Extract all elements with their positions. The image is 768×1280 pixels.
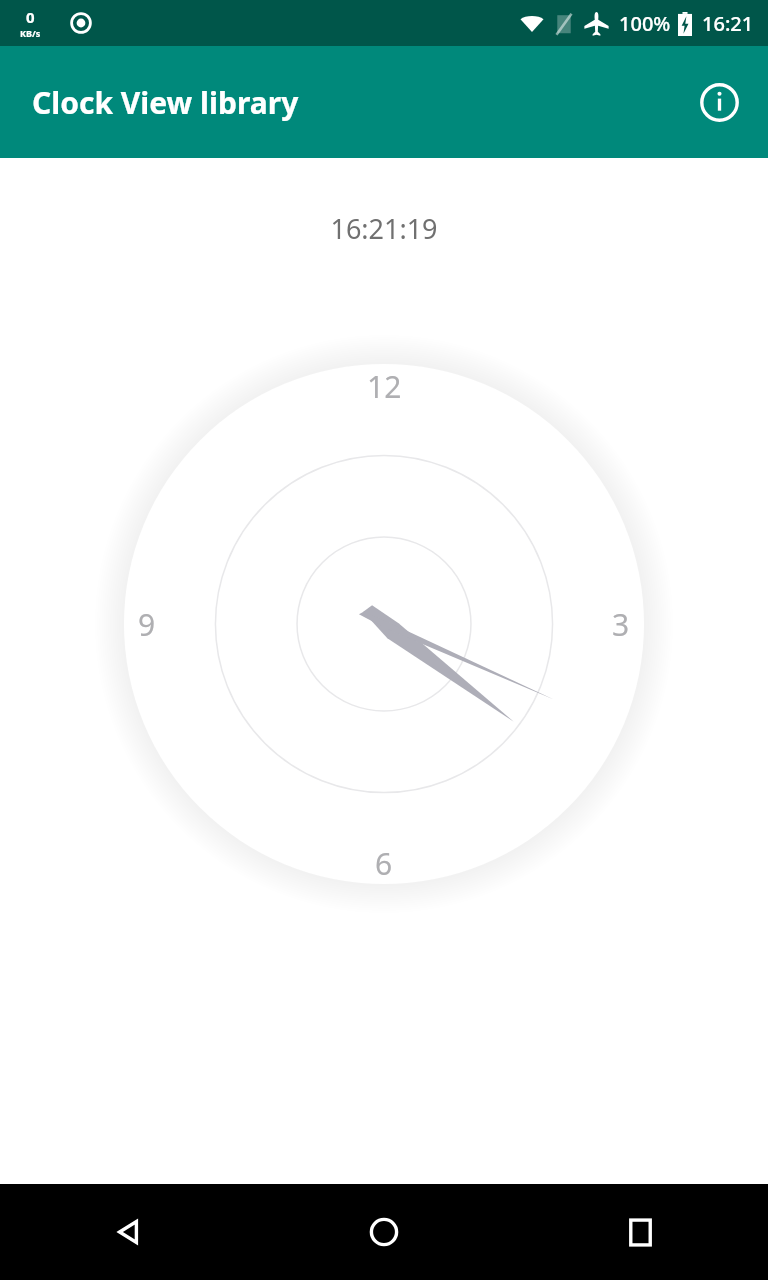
staticText: 3 bbox=[612, 604, 630, 645]
staticText: 0 bbox=[26, 7, 35, 27]
button[interactable]: Info bbox=[690, 73, 748, 131]
staticText: 16:21:19 bbox=[0, 210, 768, 247]
staticText: 16:21 bbox=[702, 10, 754, 37]
staticText: 100% bbox=[619, 10, 671, 37]
staticText: KB/s bbox=[20, 27, 41, 39]
staticText: 6 bbox=[375, 843, 393, 884]
staticText: 12 bbox=[367, 366, 402, 407]
button[interactable]: Back bbox=[0, 1184, 256, 1280]
button[interactable]: Recent apps bbox=[512, 1184, 768, 1280]
staticText: Clock View library bbox=[32, 82, 299, 123]
button[interactable]: Analog clock bbox=[94, 334, 674, 914]
staticText: 9 bbox=[138, 604, 156, 645]
button[interactable]: Home bbox=[256, 1184, 512, 1280]
